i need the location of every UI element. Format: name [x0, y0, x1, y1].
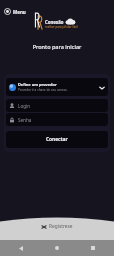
staticText: Conexão	[45, 19, 64, 25]
button[interactable]: Senha	[6, 113, 108, 126]
button[interactable]: Home	[42, 240, 72, 256]
staticText: Provedor é a chave do seu acesso.	[18, 88, 68, 92]
staticText: Pronto para iniciar	[0, 43, 114, 50]
staticText: Conectar	[46, 136, 68, 143]
staticText: Senha	[18, 117, 32, 123]
staticText: melhor para já lidar fácil	[45, 25, 78, 29]
button[interactable]: Recent apps	[78, 240, 108, 256]
button[interactable]: Menu	[2, 6, 28, 17]
button[interactable]: Registrese	[40, 222, 74, 231]
staticText: Registrese	[49, 223, 73, 230]
button[interactable]: Back	[6, 240, 36, 256]
button[interactable]: Define um provedor	[6, 78, 108, 96]
button[interactable]: Login	[6, 99, 108, 112]
button[interactable]: Conectar	[6, 131, 108, 148]
staticText: Login	[18, 103, 31, 109]
staticText: Define um provedor	[18, 82, 57, 87]
staticText: Menu	[13, 9, 26, 15]
